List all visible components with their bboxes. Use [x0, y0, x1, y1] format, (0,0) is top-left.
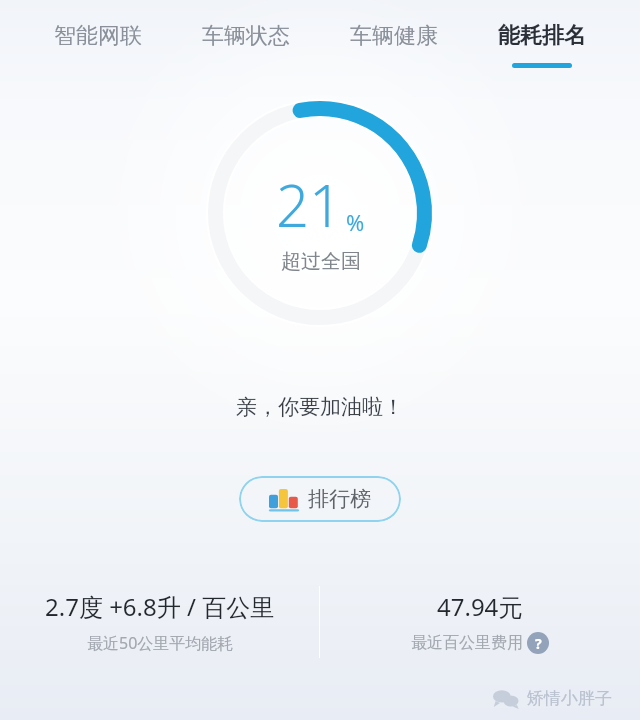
staticText: 车辆状态 — [202, 22, 290, 50]
staticText: 47.94元 — [437, 590, 523, 623]
button[interactable]: 车辆状态 — [172, 0, 320, 63]
staticText: 排行榜 — [308, 486, 371, 512]
staticText: % — [346, 207, 365, 237]
staticText: 矫情小胖子 — [527, 688, 612, 709]
button[interactable]: 智能网联 — [24, 0, 172, 63]
staticText: 2.7度 +6.8升 / 百公里 — [45, 590, 275, 623]
staticText: 智能网联 — [54, 22, 142, 50]
button[interactable]: 帮助说明 — [527, 632, 549, 654]
staticText: 最近50公里平均能耗 — [87, 632, 234, 654]
staticText: ? — [535, 634, 542, 653]
staticText: 亲，你要加油啦！ — [236, 394, 404, 420]
staticText: 车辆健康 — [350, 22, 438, 50]
button[interactable]: 排行榜 — [239, 476, 401, 522]
staticText: 能耗排名 — [498, 22, 586, 50]
staticText: 超过全国 — [281, 249, 361, 274]
staticText: 21 — [276, 165, 343, 244]
button[interactable]: 车辆健康 — [320, 0, 468, 63]
button[interactable]: 能耗排名 — [468, 0, 616, 68]
staticText: 最近百公里费用 — [411, 633, 523, 653]
